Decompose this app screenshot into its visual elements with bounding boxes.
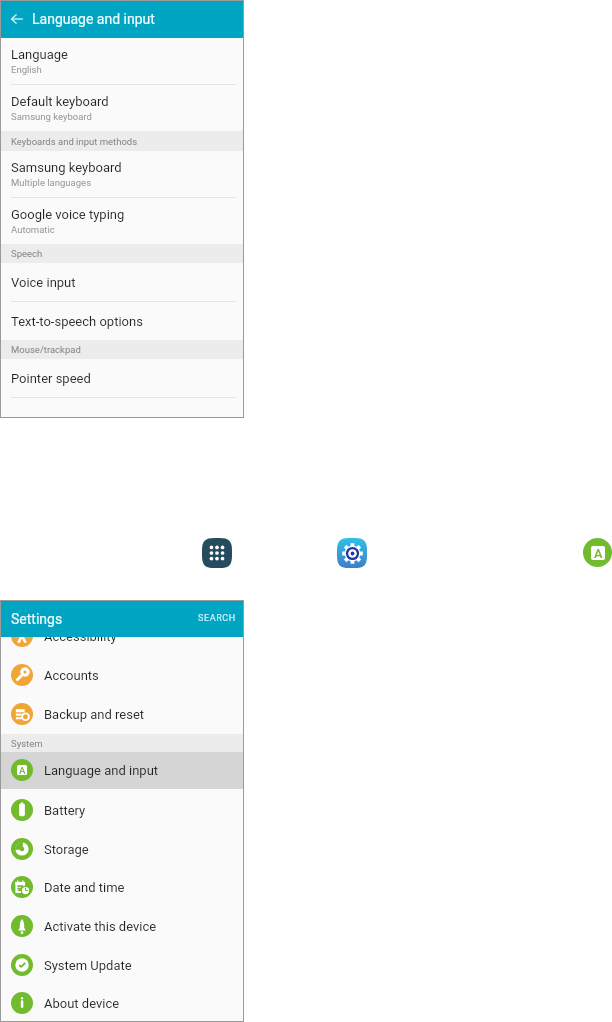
- staticText: Default keyboard: [11, 94, 109, 109]
- button[interactable]: Text-to-speech options: [0, 302, 244, 340]
- staticText: SEARCH: [198, 613, 236, 624]
- button[interactable]: Back: [0, 0, 32, 38]
- button[interactable]: A: [0, 751, 244, 789]
- staticText: Backup and reset: [44, 707, 145, 722]
- staticText: System Update: [44, 958, 132, 973]
- staticText: Battery: [44, 803, 86, 818]
- button[interactable]: About device: [0, 984, 244, 1022]
- button[interactable]: Language and input: [583, 538, 612, 567]
- staticText: Accounts: [44, 668, 99, 683]
- staticText: Pointer speed: [11, 371, 91, 386]
- button[interactable]: Battery: [0, 791, 244, 829]
- staticText: Text-to-speech options: [11, 314, 143, 329]
- staticText: Activate this device: [44, 919, 157, 934]
- staticText: Language and input: [44, 763, 159, 778]
- staticText: About device: [44, 996, 120, 1011]
- button[interactable]: Apps: [202, 538, 232, 568]
- button[interactable]: Google voice typing: [0, 198, 244, 244]
- staticText: System: [11, 738, 43, 749]
- staticText: Samsung keyboard: [11, 160, 122, 175]
- staticText: Storage: [44, 842, 89, 857]
- staticText: English: [11, 64, 42, 75]
- button[interactable]: SEARCH: [198, 613, 236, 624]
- staticText: Voice input: [11, 275, 76, 290]
- staticText: Google voice typing: [11, 207, 125, 222]
- button[interactable]: Voice input: [0, 263, 244, 302]
- button[interactable]: Storage: [0, 830, 244, 868]
- staticText: Date and time: [44, 880, 125, 895]
- staticText: Mouse/trackpad: [11, 344, 81, 355]
- button[interactable]: System Update: [0, 946, 244, 984]
- staticText: A: [19, 765, 26, 775]
- staticText: Language and input: [32, 11, 155, 27]
- button[interactable]: Language: [0, 38, 244, 85]
- staticText: Language: [11, 47, 68, 62]
- button[interactable]: Pointer speed: [0, 359, 244, 398]
- staticText: Multiple languages: [11, 177, 92, 188]
- button[interactable]: Accounts: [0, 656, 244, 694]
- button[interactable]: Accessibility: [0, 617, 244, 655]
- staticText: Samsung keyboard: [11, 111, 92, 122]
- button[interactable]: Settings: [337, 538, 367, 568]
- button[interactable]: Samsung keyboard: [0, 151, 244, 198]
- staticText: Speech: [11, 248, 43, 259]
- staticText: Automatic: [11, 224, 55, 235]
- button[interactable]: Activate this device: [0, 907, 244, 945]
- staticText: Settings: [11, 611, 63, 627]
- staticText: Accessibility: [44, 629, 117, 644]
- button[interactable]: Backup and reset: [0, 695, 244, 733]
- button[interactable]: Date and time: [0, 868, 244, 906]
- button[interactable]: Default keyboard: [0, 85, 244, 131]
- staticText: A: [594, 546, 603, 560]
- staticText: Keyboards and input methods: [11, 136, 138, 147]
